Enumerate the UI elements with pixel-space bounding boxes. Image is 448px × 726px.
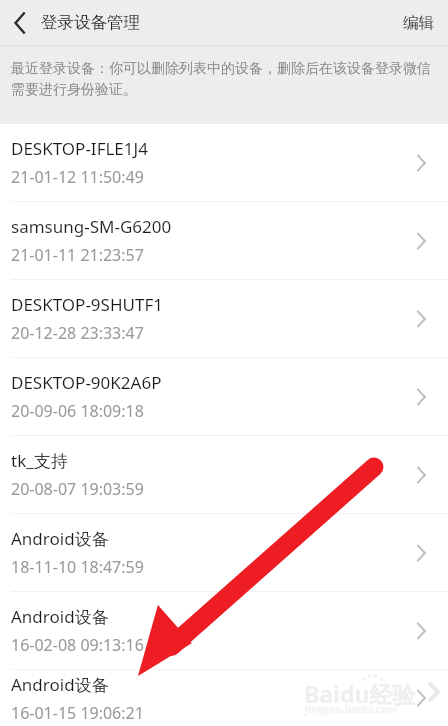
staticText: Android设备 <box>11 673 109 696</box>
button[interactable]: Android设备 <box>0 592 448 669</box>
button[interactable]: Android设备 <box>0 514 448 591</box>
staticText: Android设备 <box>11 527 109 550</box>
button[interactable]: Android设备 <box>0 670 448 726</box>
staticText: DESKTOP-90K2A6P <box>11 371 162 394</box>
staticText: 18-11-10 18:47:59 <box>11 556 144 578</box>
staticText: 最近登录设备：你可以删除列表中的设备，删除后在该设备登录微信需要进行身份验证。 <box>11 60 436 98</box>
button[interactable]: samsung-SM-G6200 <box>0 202 448 279</box>
staticText: jingyan.baidu.com <box>305 702 397 716</box>
button[interactable]: DESKTOP-9SHUTF1 <box>0 280 448 357</box>
staticText: DESKTOP-IFLE1J4 <box>11 137 148 160</box>
button[interactable]: DESKTOP-IFLE1J4 <box>0 124 448 201</box>
staticText: 20-09-06 18:09:18 <box>11 400 144 422</box>
button[interactable]: 编辑 <box>389 3 448 43</box>
staticText: 20-12-28 23:33:47 <box>11 322 144 344</box>
staticText: Baidu经验 <box>304 678 416 709</box>
staticText: 编辑 <box>403 13 434 33</box>
staticText: DESKTOP-9SHUTF1 <box>11 293 163 316</box>
staticText: 21-01-11 21:23:57 <box>11 244 144 266</box>
staticText: 21-01-12 11:50:49 <box>11 166 144 188</box>
staticText: 16-01-15 19:06:21 <box>11 702 144 724</box>
button[interactable]: DESKTOP-90K2A6P <box>0 358 448 435</box>
staticText: samsung-SM-G6200 <box>11 215 172 238</box>
staticText: Android设备 <box>11 605 109 628</box>
staticText: 20-08-07 19:03:59 <box>11 478 144 500</box>
staticText: 登录设备管理 <box>41 12 140 33</box>
button[interactable]: tk_支持 <box>0 436 448 513</box>
staticText: 16-02-08 09:13:16 <box>11 634 144 656</box>
staticText: tk_支持 <box>11 449 68 472</box>
button[interactable]: 返回 <box>0 0 40 45</box>
